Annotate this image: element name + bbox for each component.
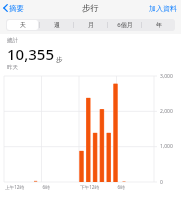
staticText: 週 bbox=[54, 21, 60, 29]
button[interactable]: 週 bbox=[41, 20, 72, 30]
staticText: 步行 bbox=[82, 3, 99, 14]
button[interactable]: 月 bbox=[75, 20, 106, 30]
button[interactable]: 6個月 bbox=[109, 20, 140, 30]
staticText: 6個月 bbox=[117, 21, 133, 29]
staticText: 總計 bbox=[7, 37, 18, 44]
button[interactable]: 加入資料 bbox=[145, 0, 181, 16]
staticText: 步 bbox=[56, 56, 63, 64]
button[interactable]: 年 bbox=[143, 20, 174, 30]
button[interactable]: 摘要 bbox=[0, 0, 29, 16]
staticText: 天 bbox=[20, 21, 26, 29]
staticText: 10,355 bbox=[7, 44, 54, 64]
button[interactable]: 天 bbox=[7, 20, 38, 30]
staticText: 月 bbox=[88, 21, 94, 29]
staticText: 昨天 bbox=[7, 64, 18, 71]
staticText: 年 bbox=[156, 21, 162, 29]
staticText: 加入資料 bbox=[149, 4, 177, 13]
staticText: 摘要 bbox=[9, 4, 24, 13]
